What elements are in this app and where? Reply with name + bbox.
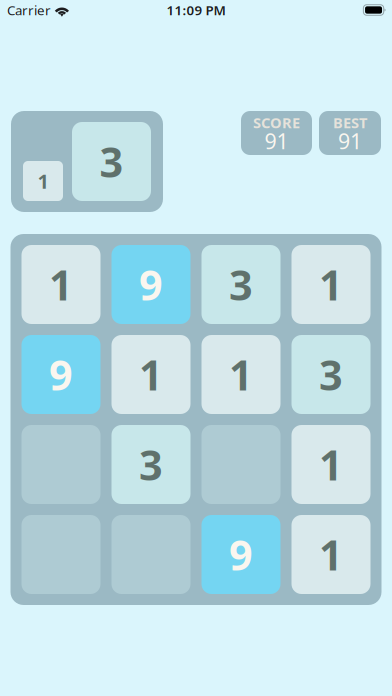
staticText: 9 [229,527,253,582]
staticText: 1 [319,257,343,312]
staticText: SCORE [253,113,300,132]
staticText: 1 [139,347,163,402]
staticText: 3 [99,134,123,189]
staticText: Carrier [7,1,51,19]
staticText: 3 [229,257,253,312]
button[interactable]: SCORE [241,111,312,155]
staticText: 3 [139,437,163,492]
staticText: 1 [37,168,48,194]
staticText: 1 [229,347,253,402]
staticText: 9 [49,347,73,402]
button[interactable]: BEST [319,111,381,155]
staticText: 91 [264,127,288,155]
staticText: 1 [49,257,73,312]
staticText: 11:09 PM [166,1,225,19]
staticText: 91 [338,127,362,155]
button[interactable]: Next tiles [11,111,163,212]
staticText: BEST [333,113,367,132]
staticText: 1 [319,437,343,492]
staticText: 1 [319,527,343,582]
staticText: 3 [319,347,343,402]
staticText: 9 [139,257,163,312]
